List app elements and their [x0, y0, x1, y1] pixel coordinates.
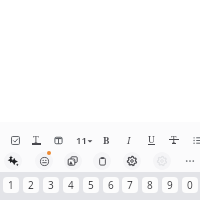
staticText: 0	[187, 178, 193, 192]
button[interactable]: 9	[162, 177, 178, 193]
button[interactable]: Settings	[123, 152, 141, 170]
staticText: 7	[127, 178, 133, 192]
button[interactable]: 6	[103, 177, 119, 193]
button[interactable]: 4	[63, 177, 79, 193]
button[interactable]: Magic compose	[4, 152, 22, 170]
button[interactable]: Stickers	[153, 152, 171, 170]
button[interactable]: 3	[43, 177, 59, 193]
button[interactable]: Insert table	[50, 132, 66, 148]
staticText: 2	[28, 178, 34, 192]
staticText: B	[103, 134, 110, 147]
staticText: 11	[76, 134, 87, 147]
staticText: T	[171, 133, 177, 145]
button[interactable]: More options	[182, 153, 198, 169]
button[interactable]: Strikethrough	[166, 132, 182, 148]
staticText: 4	[68, 178, 74, 192]
button[interactable]: 2	[23, 177, 39, 193]
staticText: I	[127, 134, 131, 147]
button[interactable]: Bulleted list	[189, 132, 200, 148]
staticText: T	[33, 133, 39, 146]
button[interactable]: 8	[142, 177, 158, 193]
button[interactable]: 11	[75, 133, 93, 147]
button[interactable]: Clipboard	[93, 152, 111, 170]
staticText: 1	[8, 178, 14, 192]
staticText: 3	[48, 178, 54, 192]
button[interactable]: Checklist	[7, 132, 23, 148]
staticText: 6	[108, 178, 114, 192]
staticText: 8	[147, 178, 153, 192]
button[interactable]: 0	[182, 177, 198, 193]
button[interactable]: Insert image	[64, 152, 82, 170]
button[interactable]: Underline	[143, 132, 159, 148]
button[interactable]: 5	[83, 177, 99, 193]
button[interactable]: Bold	[98, 132, 114, 148]
staticText: U	[148, 133, 155, 146]
button[interactable]: Italic	[121, 132, 137, 148]
button[interactable]: Text formatting	[28, 132, 44, 148]
staticText: 9	[167, 178, 173, 192]
button[interactable]: Emoji	[35, 152, 53, 170]
staticText: 5	[88, 178, 94, 192]
button[interactable]: 7	[122, 177, 138, 193]
button[interactable]: 1	[3, 177, 19, 193]
